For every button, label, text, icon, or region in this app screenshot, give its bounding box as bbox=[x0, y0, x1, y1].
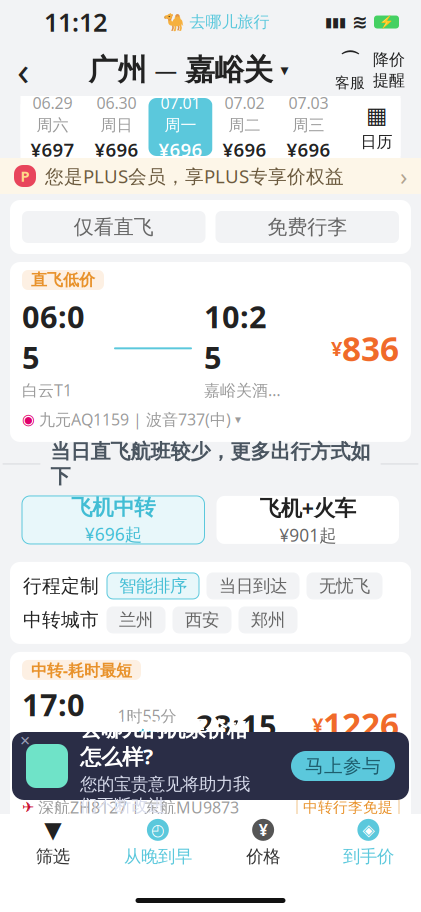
staticText: 周日 bbox=[100, 115, 132, 135]
staticText: 飞机+火车 bbox=[260, 493, 356, 522]
staticText: 中转行李免提 bbox=[303, 798, 393, 816]
staticText: 当日直飞航班较少，更多出行方式如下 bbox=[50, 439, 370, 488]
button[interactable]: P bbox=[0, 158, 421, 194]
button[interactable]: 郑州 bbox=[239, 607, 297, 633]
staticText: ···· bbox=[158, 891, 170, 907]
staticText: 周六 bbox=[36, 115, 68, 135]
button[interactable]: 06.30 bbox=[84, 98, 148, 156]
staticText: 免费行李 bbox=[267, 215, 347, 239]
staticText: 周三 bbox=[292, 115, 324, 135]
button[interactable]: 中转-耗时最短 bbox=[0, 644, 421, 828]
staticText: ¥ bbox=[259, 819, 268, 840]
button[interactable]: 关闭广告 bbox=[16, 732, 34, 750]
button[interactable]: ▦ bbox=[352, 98, 400, 156]
staticText: 18:35 bbox=[196, 867, 277, 908]
button[interactable]: ¥ bbox=[210, 819, 316, 867]
staticText: ¥697 bbox=[30, 137, 74, 162]
staticText: ◴ bbox=[151, 821, 165, 839]
staticText: 07.01 bbox=[160, 92, 200, 113]
button[interactable]: 11:25 bbox=[0, 828, 421, 912]
staticText: 郑州 bbox=[251, 609, 285, 631]
staticText: ⚡ bbox=[379, 15, 394, 29]
button[interactable]: 马上参与 bbox=[291, 751, 395, 781]
staticText: 客服 bbox=[335, 74, 365, 92]
staticText: — bbox=[154, 55, 177, 85]
staticText: ¥ bbox=[331, 335, 342, 362]
staticText: 去哪儿的机票价格怎么样? bbox=[80, 716, 248, 770]
staticText: 中转城市 bbox=[23, 608, 99, 631]
staticText: 行程定制 bbox=[23, 574, 99, 597]
button[interactable]: ◈ bbox=[316, 819, 421, 867]
staticText: 07.02 bbox=[224, 92, 264, 113]
button[interactable]: 广州 bbox=[88, 52, 288, 88]
button[interactable]: 飞机中转 bbox=[22, 496, 204, 544]
staticText: 06.30 bbox=[96, 92, 136, 113]
staticText: 当日到达 bbox=[219, 575, 287, 597]
button[interactable]: 当日到达 bbox=[207, 573, 299, 599]
button[interactable]: 降价 bbox=[369, 50, 409, 90]
staticText: 转 bbox=[139, 889, 155, 909]
staticText: 深航ZH8127 | 东航MU9873 bbox=[38, 797, 239, 818]
staticText: ▼ bbox=[44, 817, 61, 843]
staticText: 11:12 bbox=[44, 5, 107, 39]
staticText: 23:15 bbox=[196, 705, 277, 746]
staticText: ¥696起 bbox=[85, 522, 142, 545]
button[interactable]: 西安 bbox=[173, 607, 231, 633]
staticText: 11:25 bbox=[22, 846, 85, 912]
staticText: 直飞低价 bbox=[31, 270, 95, 290]
staticText: 价格 bbox=[246, 846, 280, 867]
button[interactable]: 返回 bbox=[0, 45, 46, 95]
staticText: ▮▮▮ bbox=[325, 14, 346, 29]
staticText: 🐪 bbox=[162, 12, 184, 32]
button[interactable]: 06.29 bbox=[20, 98, 84, 156]
button[interactable]: 仅看直飞 bbox=[22, 211, 205, 243]
staticText: ✈ bbox=[22, 799, 34, 815]
button[interactable]: 07.01 bbox=[148, 98, 212, 156]
staticText: 去哪儿旅行 bbox=[189, 12, 269, 32]
staticText: 06:05 bbox=[22, 296, 85, 377]
button[interactable]: 07.03 bbox=[276, 98, 340, 156]
staticText: 九元AQ1159 | 波音737(中) bbox=[39, 409, 231, 430]
staticText: 06.29 bbox=[32, 92, 72, 113]
staticText: ¥696 bbox=[222, 137, 266, 162]
staticText: 白云T1 bbox=[22, 379, 72, 401]
button[interactable]: 兰州 bbox=[107, 607, 165, 633]
staticText: ¥696 bbox=[158, 137, 202, 162]
button[interactable]: ▼ bbox=[0, 819, 105, 867]
staticText: 兰州 bbox=[131, 748, 163, 768]
button[interactable]: 无忧飞 bbox=[307, 573, 382, 599]
button[interactable]: 飞机+火车 bbox=[216, 496, 399, 544]
button[interactable]: ⌒ bbox=[331, 48, 369, 92]
staticText: 836 bbox=[342, 326, 399, 370]
button[interactable]: 免费行李 bbox=[215, 211, 399, 243]
staticText: ≋ bbox=[352, 11, 368, 33]
staticText: 日历 bbox=[360, 132, 392, 152]
staticText: 无忧飞 bbox=[319, 575, 370, 597]
staticText: 白云T1 bbox=[22, 767, 72, 789]
staticText: 共6时10分 bbox=[324, 749, 399, 770]
staticText: 1时55分 bbox=[117, 705, 176, 726]
staticText: 1086 bbox=[323, 864, 399, 909]
button[interactable]: 直飞低价 bbox=[0, 254, 421, 442]
staticText: ▦ bbox=[366, 102, 387, 128]
staticText: ▾ bbox=[235, 412, 241, 426]
staticText: 1226 bbox=[323, 702, 399, 747]
staticText: 07.03 bbox=[288, 92, 328, 113]
staticText: 智能排序 bbox=[119, 575, 187, 597]
button[interactable]: 智能排序 bbox=[107, 573, 199, 599]
staticText: ‹ bbox=[17, 43, 29, 96]
staticText: ◈ bbox=[362, 821, 374, 839]
staticText: 中转-耗时最短 bbox=[31, 659, 132, 680]
staticText: ¥696 bbox=[286, 137, 330, 162]
staticText: 兰州 bbox=[119, 609, 153, 631]
button[interactable]: ◴ bbox=[105, 819, 210, 867]
button[interactable]: 07.02 bbox=[212, 98, 276, 156]
staticText: ···· bbox=[124, 729, 136, 745]
staticText: 马上参与 bbox=[305, 754, 381, 777]
staticText: 10:25 bbox=[204, 296, 267, 377]
staticText: 提醒 bbox=[373, 70, 405, 90]
